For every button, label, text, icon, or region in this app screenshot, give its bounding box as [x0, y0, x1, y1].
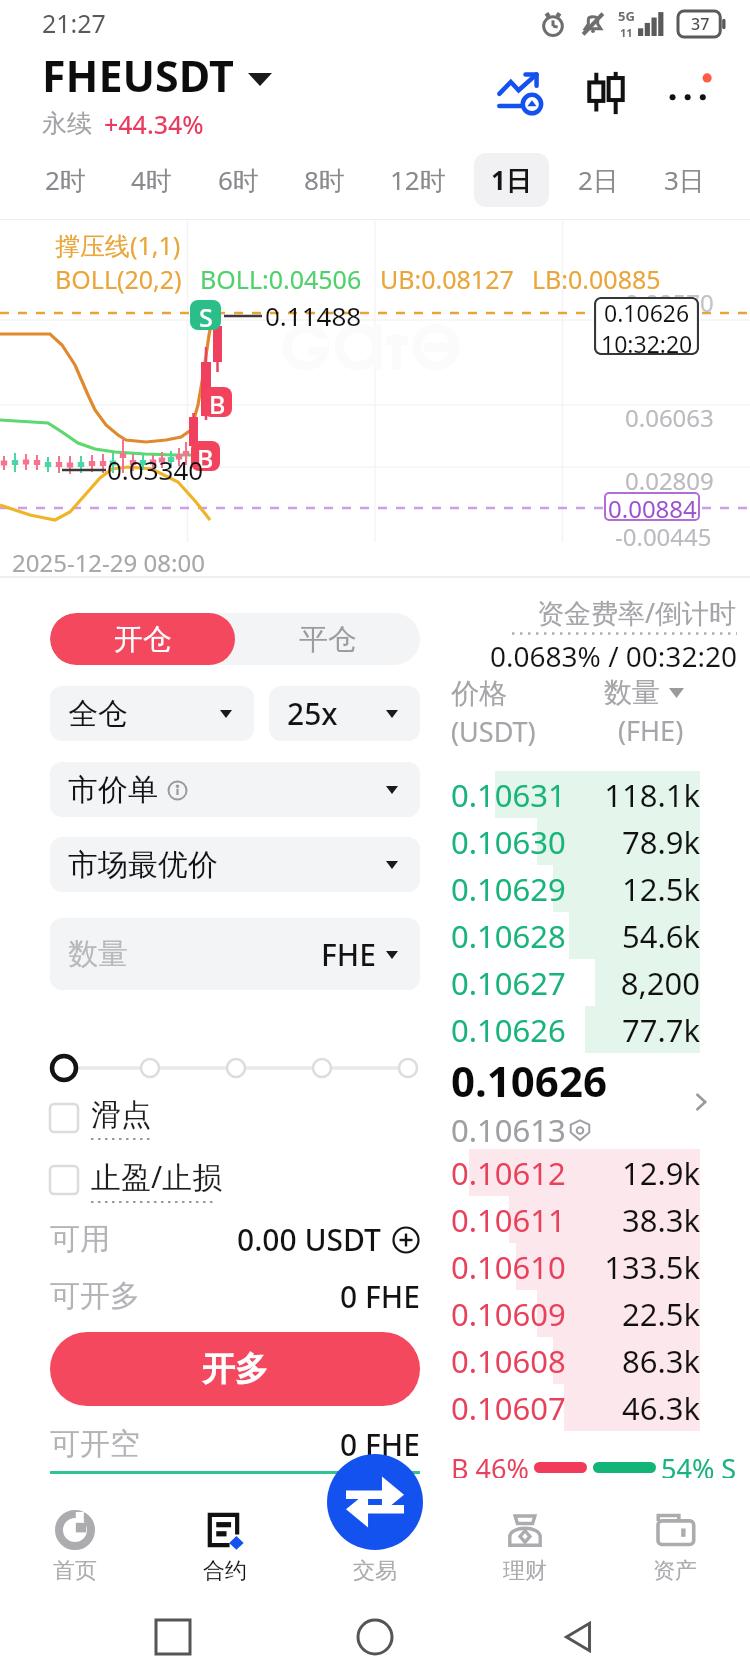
staticText: 0.10607 [451, 1387, 575, 1429]
button[interactable]: 理财 [450, 1478, 600, 1594]
button[interactable]: 滑点 [50, 1096, 151, 1140]
button[interactable]: 首页 [0, 1478, 150, 1594]
staticText: B [209, 387, 226, 417]
staticText: 0.09570 [625, 286, 714, 319]
button[interactable]: 0.10610 [437, 1243, 750, 1290]
staticText: 8时 [304, 162, 345, 198]
staticText: 0.10612 [451, 1152, 575, 1194]
button[interactable]: Price chart [0, 220, 750, 578]
staticText: LB:0.00885 [532, 262, 661, 296]
staticText: FHEUSDT [42, 46, 234, 105]
staticText: 37 [691, 13, 710, 35]
button[interactable]: 8时 [287, 153, 362, 207]
staticText: 数量 [68, 935, 128, 973]
staticText: (FHE) [618, 712, 684, 749]
button[interactable]: 交易 [300, 1478, 450, 1594]
button[interactable]: More options [662, 63, 722, 123]
staticText: 38.3k [575, 1199, 700, 1241]
staticText: 滑点 [91, 1096, 151, 1134]
button[interactable]: Recents [143, 1607, 203, 1667]
button[interactable]: 0.10629 [437, 865, 750, 912]
staticText: 可用 [50, 1220, 110, 1258]
button[interactable]: Back [548, 1607, 608, 1667]
staticText: 永续 [42, 108, 92, 139]
staticText: 资金费率/倒计时 [537, 594, 737, 631]
staticText: 0.03340 [107, 452, 204, 487]
staticText: 市价单 [68, 771, 158, 809]
button[interactable]: 2时 [28, 153, 103, 207]
button[interactable]: 3日 [647, 153, 722, 207]
staticText: 78.9k [575, 821, 700, 863]
button[interactable]: FHEUSDT [42, 46, 272, 105]
button[interactable]: 4时 [114, 153, 189, 207]
staticText: 12.9k [575, 1152, 700, 1194]
button[interactable]: 0.10609 [437, 1290, 750, 1337]
button[interactable]: 0.10612 [437, 1149, 750, 1196]
button[interactable]: 25x [269, 686, 420, 741]
staticText: 0.10631 [451, 774, 575, 816]
staticText: 0.10626 [604, 297, 690, 328]
button[interactable]: 开多 [50, 1332, 420, 1406]
staticText: 合约 [203, 1557, 247, 1585]
button[interactable]: 6时 [201, 153, 276, 207]
staticText: 止盈/止损 [91, 1156, 223, 1197]
staticText: 交易 [353, 1557, 397, 1585]
button[interactable]: 交易 Trade [327, 1454, 423, 1550]
staticText: B [197, 441, 214, 471]
button[interactable]: 1日 [474, 153, 549, 207]
button[interactable]: 平仓 [235, 613, 420, 665]
button[interactable]: 开仓 [50, 613, 235, 665]
staticText: 0 FHE [340, 1424, 420, 1465]
button[interactable]: Order book details [686, 1087, 716, 1117]
staticText: 12时 [390, 162, 446, 198]
staticText: 0.0683% / 00:32:20 [490, 637, 737, 675]
button[interactable]: 合约 [150, 1478, 300, 1594]
button[interactable]: 0.10628 [437, 912, 750, 959]
staticText: 77.7k [575, 1009, 700, 1051]
button[interactable]: 0.10607 [437, 1384, 750, 1431]
button[interactable]: Home [345, 1607, 405, 1667]
staticText: 0.10629 [451, 868, 575, 910]
button[interactable]: 全仓 [50, 686, 254, 741]
staticText: 可开多 [50, 1277, 140, 1315]
button[interactable]: 0.10626 [437, 1052, 750, 1151]
staticText: 撑压线(1,1) [55, 228, 181, 262]
button[interactable]: 市场最优价 [50, 837, 420, 892]
staticText: -0.00445 [615, 520, 712, 553]
staticText: 数量 [604, 675, 660, 710]
staticText: 8,200 [575, 962, 700, 1004]
button[interactable]: 数量 [50, 918, 420, 990]
button[interactable]: Candlestick [576, 63, 636, 123]
button[interactable]: 0.10626 [437, 1006, 750, 1053]
staticText: 5G [618, 7, 635, 25]
button[interactable]: Line chart [490, 63, 550, 123]
button[interactable]: 止盈/止损 [50, 1156, 223, 1203]
staticText: 22.5k [575, 1293, 700, 1335]
staticText: 0.10626 [451, 1009, 575, 1051]
staticText: UB:0.08127 [380, 262, 514, 296]
button[interactable]: 2日 [561, 153, 636, 207]
staticText: 118.1k [575, 774, 700, 816]
staticText: 0.10613 [451, 1109, 566, 1151]
staticText: 0.00884 [608, 492, 697, 521]
staticText: 10:32:20 [601, 328, 693, 355]
staticText: 2时 [45, 162, 86, 198]
button[interactable]: 0.10631 [437, 771, 750, 818]
button[interactable]: 12时 [373, 153, 463, 207]
button[interactable]: 0.10608 [437, 1337, 750, 1384]
staticText: 133.5k [575, 1246, 700, 1288]
button[interactable]: 资产 [600, 1478, 750, 1594]
button[interactable]: 0.10611 [437, 1196, 750, 1243]
staticText: 1日 [491, 162, 532, 198]
button[interactable]: Deposit [392, 1226, 420, 1254]
button[interactable]: 0.10630 [437, 818, 750, 865]
staticText: 0.10630 [451, 821, 575, 863]
staticText: 6时 [218, 162, 259, 198]
staticText: 资产 [653, 1557, 697, 1585]
button[interactable]: 0.10627 [437, 959, 750, 1006]
staticText: 2日 [578, 162, 619, 198]
staticText: (USDT) [451, 713, 536, 750]
staticText: 86.3k [575, 1340, 700, 1382]
staticText: 11 [620, 25, 633, 40]
button[interactable]: 市价单 [50, 762, 420, 817]
